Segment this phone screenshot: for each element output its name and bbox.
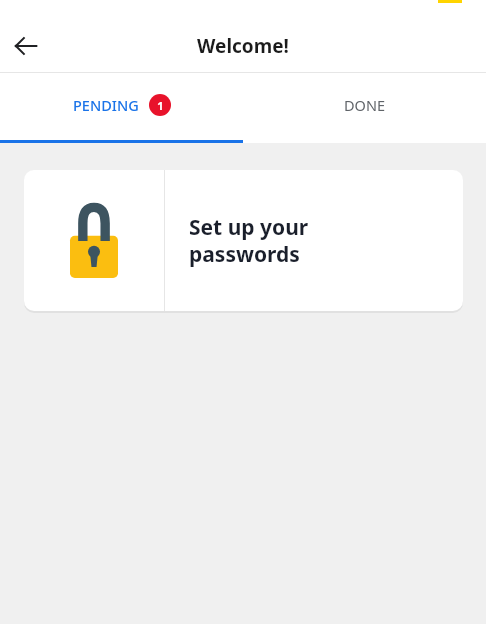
button[interactable]: Set up your passwords [24,170,463,311]
staticText: 1 [157,98,164,113]
staticText: DONE [344,95,385,115]
button[interactable]: DONE [243,73,486,143]
button[interactable]: PENDING [0,73,243,143]
button[interactable]: Back [4,24,48,68]
staticText: PENDING [73,95,139,115]
staticText: Set up your passwords [189,213,309,268]
staticText: Welcome! [0,33,486,59]
